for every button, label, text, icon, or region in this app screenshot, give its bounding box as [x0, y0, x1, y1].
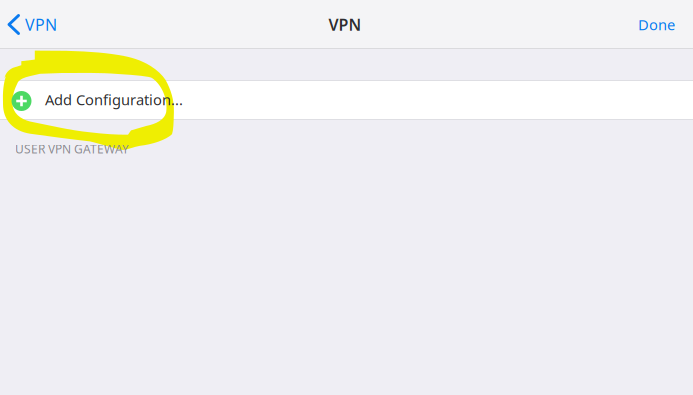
button[interactable]: Add Configuration... — [0, 80, 693, 119]
staticText: Add Configuration... — [45, 90, 183, 109]
staticText: VPN — [328, 14, 361, 35]
staticText: VPN — [25, 14, 57, 35]
button[interactable]: VPN — [0, 0, 69, 48]
staticText: USER VPN GATEWAY — [15, 141, 129, 157]
button[interactable]: Done — [624, 0, 693, 48]
staticText: Done — [638, 15, 675, 34]
